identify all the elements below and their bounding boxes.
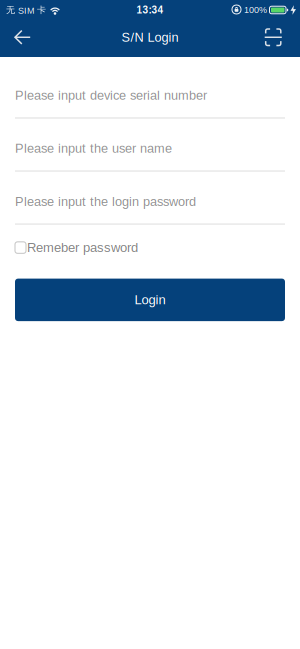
staticText: 13:34 bbox=[136, 4, 163, 16]
staticText: Please input the user name bbox=[15, 141, 172, 155]
staticText: Remeber password bbox=[27, 240, 138, 255]
staticText: 无 SIM 卡 bbox=[6, 4, 46, 16]
staticText: Login bbox=[134, 293, 165, 307]
staticText: Please input device serial number bbox=[15, 88, 207, 102]
staticText: 100% bbox=[244, 5, 267, 15]
staticText: S/N Login bbox=[121, 30, 178, 44]
staticText: Please input the login password bbox=[15, 194, 196, 209]
